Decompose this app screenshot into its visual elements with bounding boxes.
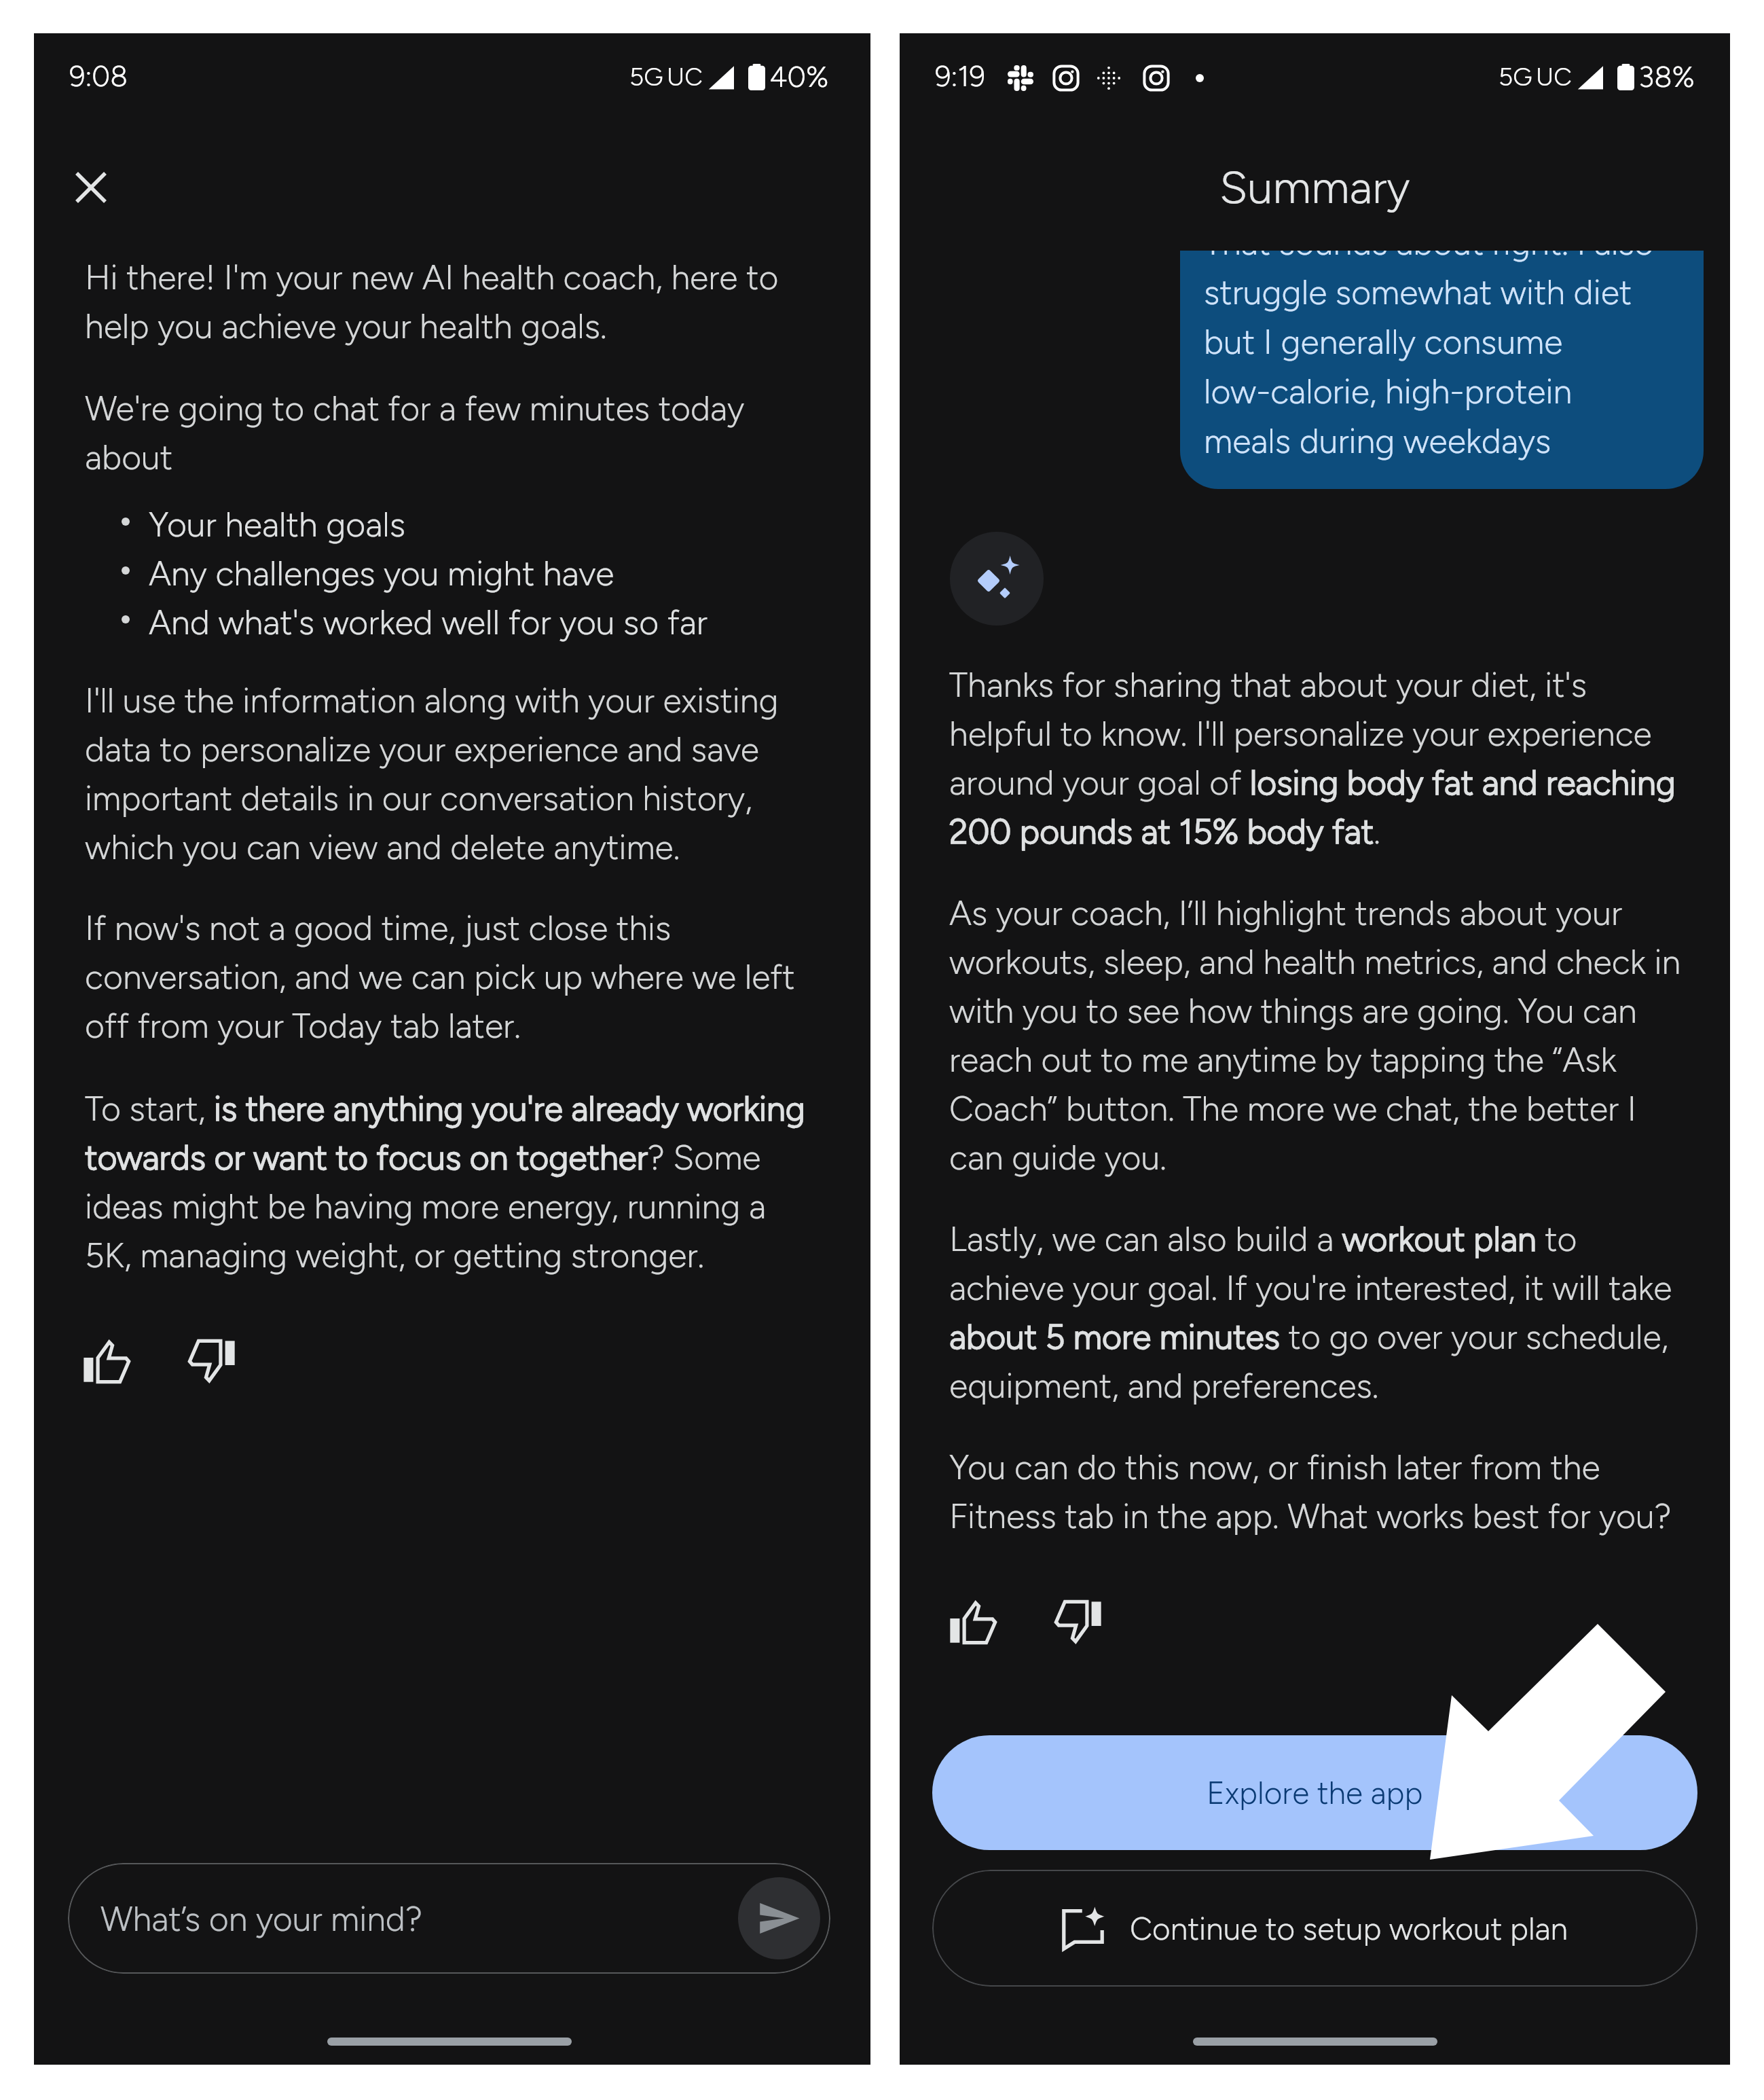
staticText: You can do this now, or finish later fro…: [949, 1441, 1682, 1538]
staticText: Any challenges you might have: [149, 547, 614, 596]
staticText: I'll use the information along with your…: [85, 674, 820, 869]
button[interactable]: What’s on your mind?: [68, 1863, 830, 1974]
staticText: What’s on your mind?: [100, 1898, 422, 1939]
staticText: We're going to chat for a few minutes to…: [85, 382, 820, 479]
staticText: 9:19: [935, 59, 986, 93]
staticText: As your coach, I’ll highlight trends abo…: [949, 886, 1682, 1180]
staticText: Explore the app: [1207, 1774, 1423, 1811]
button[interactable]: Thumbs down: [1047, 1592, 1110, 1652]
button[interactable]: Thumbs up: [941, 1592, 1004, 1652]
staticText: 5G: [629, 62, 663, 92]
staticText: UC: [667, 62, 703, 92]
staticText: Lastly, we can also build a workout plan…: [949, 1212, 1682, 1408]
staticText: Your health goals: [149, 498, 406, 547]
button[interactable]: Send: [738, 1877, 820, 1959]
button[interactable]: Close: [57, 153, 125, 221]
staticText: 5G: [1499, 62, 1532, 92]
button[interactable]: Thumbs down: [181, 1331, 244, 1391]
staticText: Thanks for sharing that about your diet,…: [949, 658, 1682, 854]
button[interactable]: Thumbs up: [75, 1331, 138, 1391]
staticText: And what's worked well for you so far: [149, 596, 708, 645]
staticText: If now's not a good time, just close thi…: [85, 901, 820, 1048]
staticText: Hi there! I'm your new AI health coach, …: [85, 251, 820, 348]
staticText: That sounds about right. I also struggle…: [1204, 251, 1679, 489]
button[interactable]: Continue to setup workout plan: [932, 1870, 1697, 1987]
staticText: UC: [1536, 62, 1572, 92]
staticText: 9:08: [69, 59, 128, 93]
button[interactable]: Explore the app: [932, 1735, 1697, 1850]
staticText: 38%: [1638, 59, 1695, 94]
staticText: Summary: [1219, 160, 1410, 214]
staticText: To start, is there anything you're alrea…: [85, 1082, 820, 1278]
staticText: Continue to setup workout plan: [1130, 1910, 1568, 1947]
staticText: 40%: [769, 59, 829, 94]
